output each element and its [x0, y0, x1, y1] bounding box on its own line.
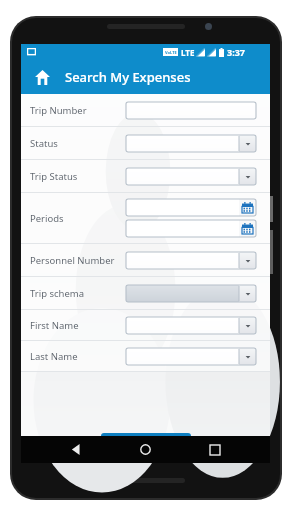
button[interactable]: Pick date [126, 220, 256, 237]
button[interactable] [126, 252, 256, 269]
button[interactable] [126, 348, 256, 365]
button[interactable]: Periods [21, 193, 270, 243]
button[interactable] [126, 317, 256, 334]
button[interactable]: Trip Number [21, 94, 270, 126]
staticText: VoLTE [165, 50, 177, 55]
button[interactable]: Status [21, 127, 270, 159]
button[interactable]: Search [101, 433, 191, 454]
other: Pick date [239, 199, 256, 216]
button[interactable]: First Name [21, 310, 270, 340]
staticText: Status [30, 137, 58, 150]
staticText: 3:37 [227, 46, 245, 58]
button[interactable] [126, 285, 256, 302]
button[interactable]: Home [132, 436, 159, 463]
staticText: LTE [181, 47, 195, 58]
staticText: Trip schema [30, 287, 85, 300]
staticText: Search [129, 437, 163, 451]
button[interactable]: Trip schema [21, 277, 270, 309]
button[interactable]: Last Name [21, 341, 270, 371]
button[interactable]: Trip Status [21, 160, 270, 192]
button[interactable]: Back [63, 436, 90, 463]
button[interactable]: Home [31, 66, 53, 88]
staticText: Trip Status [30, 170, 78, 183]
other: Pick date [239, 220, 256, 237]
button[interactable] [126, 102, 256, 119]
staticText: First Name [30, 319, 79, 332]
staticText: Personnel Number [30, 254, 115, 267]
staticText: Periods [30, 212, 64, 225]
button[interactable]: Pick date [126, 199, 256, 216]
button[interactable]: Recent apps [201, 436, 228, 463]
button[interactable] [126, 168, 256, 185]
button[interactable] [126, 135, 256, 152]
button[interactable]: Personnel Number [21, 244, 270, 276]
staticText: Search My Expenses [65, 68, 191, 86]
staticText: Trip Number [30, 104, 87, 117]
staticText: Last Name [30, 350, 78, 363]
